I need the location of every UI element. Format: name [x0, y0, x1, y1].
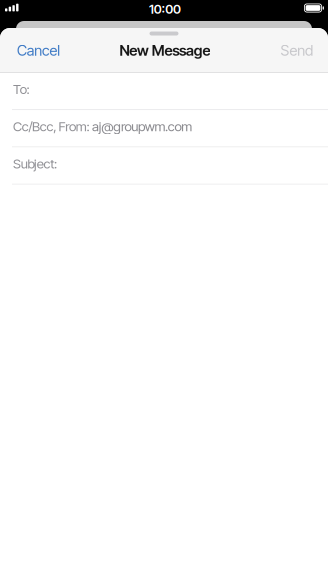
staticText: 10:00	[149, 1, 181, 17]
button[interactable]: To:	[0, 73, 328, 110]
button[interactable]: Cancel	[17, 37, 77, 63]
staticText: Subject:	[13, 156, 57, 172]
staticText: Cancel	[17, 42, 60, 59]
button[interactable]: Subject:	[0, 147, 328, 185]
button[interactable]: Cc/Bcc, From:	[0, 110, 328, 147]
staticText: aj@groupwm.com	[89, 118, 192, 134]
button[interactable]: Send	[253, 37, 313, 63]
staticText: To:	[13, 81, 29, 97]
staticText: Send	[281, 42, 313, 59]
staticText: New Message	[119, 42, 210, 59]
staticText: Cc/Bcc, From:	[13, 118, 89, 134]
